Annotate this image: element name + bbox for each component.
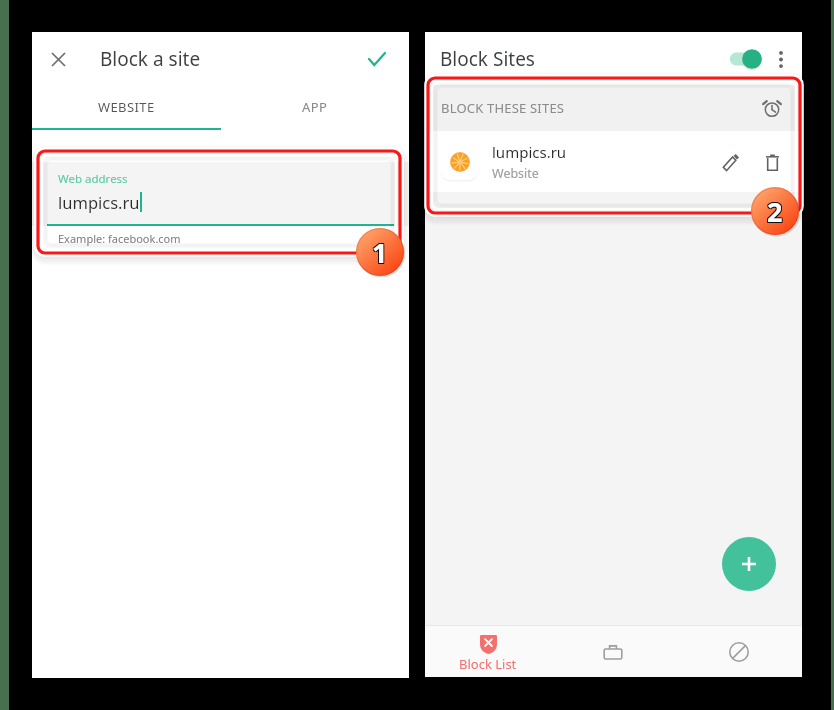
staticText: 2 bbox=[768, 194, 784, 231]
staticText: Block List bbox=[459, 655, 517, 673]
button[interactable]: More options bbox=[764, 42, 798, 76]
button[interactable]: lumpics.ru bbox=[425, 131, 802, 192]
staticText: lumpics.ru bbox=[492, 142, 567, 162]
staticText: 2 bbox=[766, 194, 782, 231]
button[interactable]: Block List bbox=[425, 626, 550, 677]
button[interactable]: Close bbox=[38, 39, 78, 79]
staticText: 1 bbox=[371, 234, 387, 271]
button[interactable]: Confirm bbox=[357, 39, 397, 79]
button[interactable]: Edit bbox=[714, 145, 748, 179]
button[interactable]: APP bbox=[220, 85, 409, 128]
staticText: 2 bbox=[768, 192, 784, 229]
staticText: 1 bbox=[371, 233, 387, 270]
staticText: 2 bbox=[767, 194, 783, 231]
staticText: lumpics.ru bbox=[58, 191, 140, 213]
button[interactable]: WEBSITE bbox=[32, 85, 220, 128]
staticText: 1 bbox=[372, 234, 388, 271]
button[interactable]: Blocked bbox=[676, 626, 802, 677]
staticText: 2 bbox=[768, 193, 784, 230]
staticText: Block Sites bbox=[440, 46, 535, 72]
staticText: 2 bbox=[766, 193, 782, 230]
staticText: 1 bbox=[371, 235, 387, 272]
staticText: Website bbox=[492, 165, 539, 182]
staticText: 2 bbox=[767, 193, 783, 230]
staticText: 1 bbox=[373, 233, 389, 270]
staticText: 2 bbox=[766, 192, 782, 229]
staticText: Web address bbox=[58, 171, 128, 187]
staticText: 1 bbox=[373, 235, 389, 272]
button[interactable]: Schedule bbox=[755, 91, 789, 125]
staticText: Block a site bbox=[100, 46, 201, 72]
button[interactable]: Delete bbox=[755, 145, 789, 179]
button[interactable]: Add site bbox=[722, 537, 776, 591]
staticText: WEBSITE bbox=[98, 98, 155, 116]
button[interactable]: Apps bbox=[550, 626, 676, 677]
staticText: 1 bbox=[373, 234, 389, 271]
staticText: Example: facebook.com bbox=[58, 231, 181, 246]
staticText: 2 bbox=[767, 192, 783, 229]
button[interactable]: Toggle blocking bbox=[720, 44, 764, 74]
staticText: BLOCK THESE SITES bbox=[441, 99, 565, 117]
staticText: APP bbox=[302, 98, 328, 116]
staticText: 1 bbox=[372, 233, 388, 270]
staticText: 1 bbox=[372, 235, 388, 272]
